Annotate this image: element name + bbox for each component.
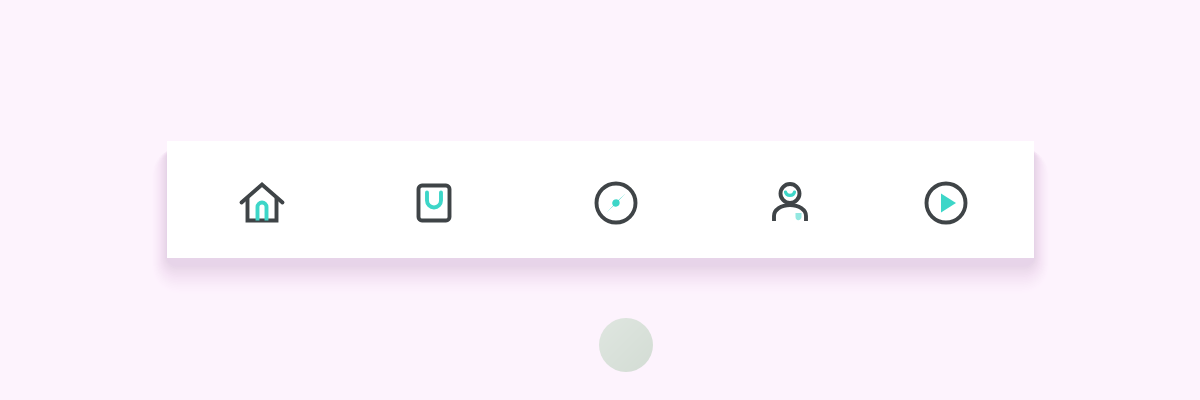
button[interactable]: Profile (758, 171, 822, 235)
button[interactable]: Home (230, 171, 294, 235)
button[interactable]: Home indicator (599, 318, 653, 372)
button[interactable]: Shop (402, 171, 466, 235)
button[interactable]: Explore (584, 171, 648, 235)
button[interactable]: Play (914, 171, 978, 235)
